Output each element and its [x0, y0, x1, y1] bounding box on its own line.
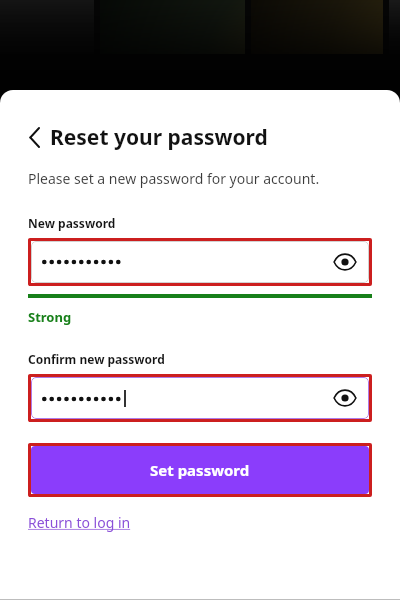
staticText: Set password	[150, 460, 250, 480]
button[interactable]: Return to log in	[28, 513, 131, 532]
button[interactable]: Set password	[31, 446, 369, 494]
button[interactable]: Show password	[31, 241, 369, 283]
other: Show password	[332, 389, 358, 407]
button[interactable]: Show password	[332, 253, 358, 271]
button[interactable]: Show password	[332, 389, 358, 407]
other: Back	[28, 128, 41, 147]
staticText: New password	[28, 215, 116, 231]
staticText: Reset your password	[50, 123, 268, 152]
staticText: Confirm new password	[28, 351, 165, 367]
button[interactable]: Back	[28, 123, 268, 152]
staticText: Strong	[28, 308, 72, 326]
button[interactable]: Show password	[31, 377, 369, 419]
other: Show password	[332, 253, 358, 271]
staticText: Please set a new password for your accou…	[28, 169, 320, 188]
staticText: Return to log in	[28, 513, 131, 532]
